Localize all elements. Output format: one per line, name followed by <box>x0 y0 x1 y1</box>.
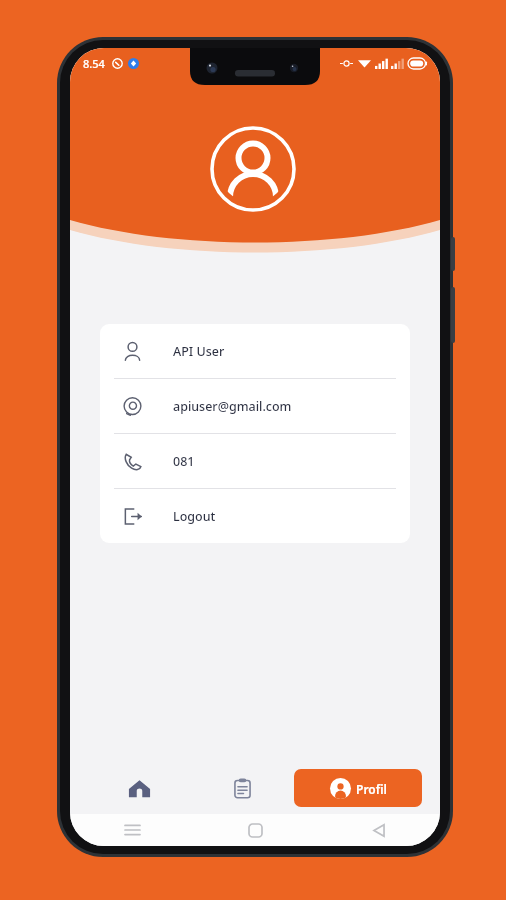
button[interactable]: API User <box>100 324 410 378</box>
staticText: 081 <box>173 453 195 470</box>
button[interactable]: Back <box>317 814 440 846</box>
staticText: apiuser@gmail.com <box>173 398 292 415</box>
button[interactable]: Reports <box>191 762 294 814</box>
staticText: Profil <box>356 781 387 797</box>
staticText: Logout <box>173 508 216 525</box>
button[interactable]: Home <box>88 762 191 814</box>
button[interactable]: 081 <box>100 434 410 488</box>
staticText: 8.54 <box>83 56 105 71</box>
button[interactable]: Home <box>194 814 317 846</box>
staticText: API User <box>173 343 225 360</box>
button[interactable]: Profil <box>294 769 422 807</box>
button[interactable]: apiuser@gmail.com <box>100 379 410 433</box>
button[interactable]: Recent apps <box>70 814 194 846</box>
button[interactable]: Logout <box>100 489 410 543</box>
